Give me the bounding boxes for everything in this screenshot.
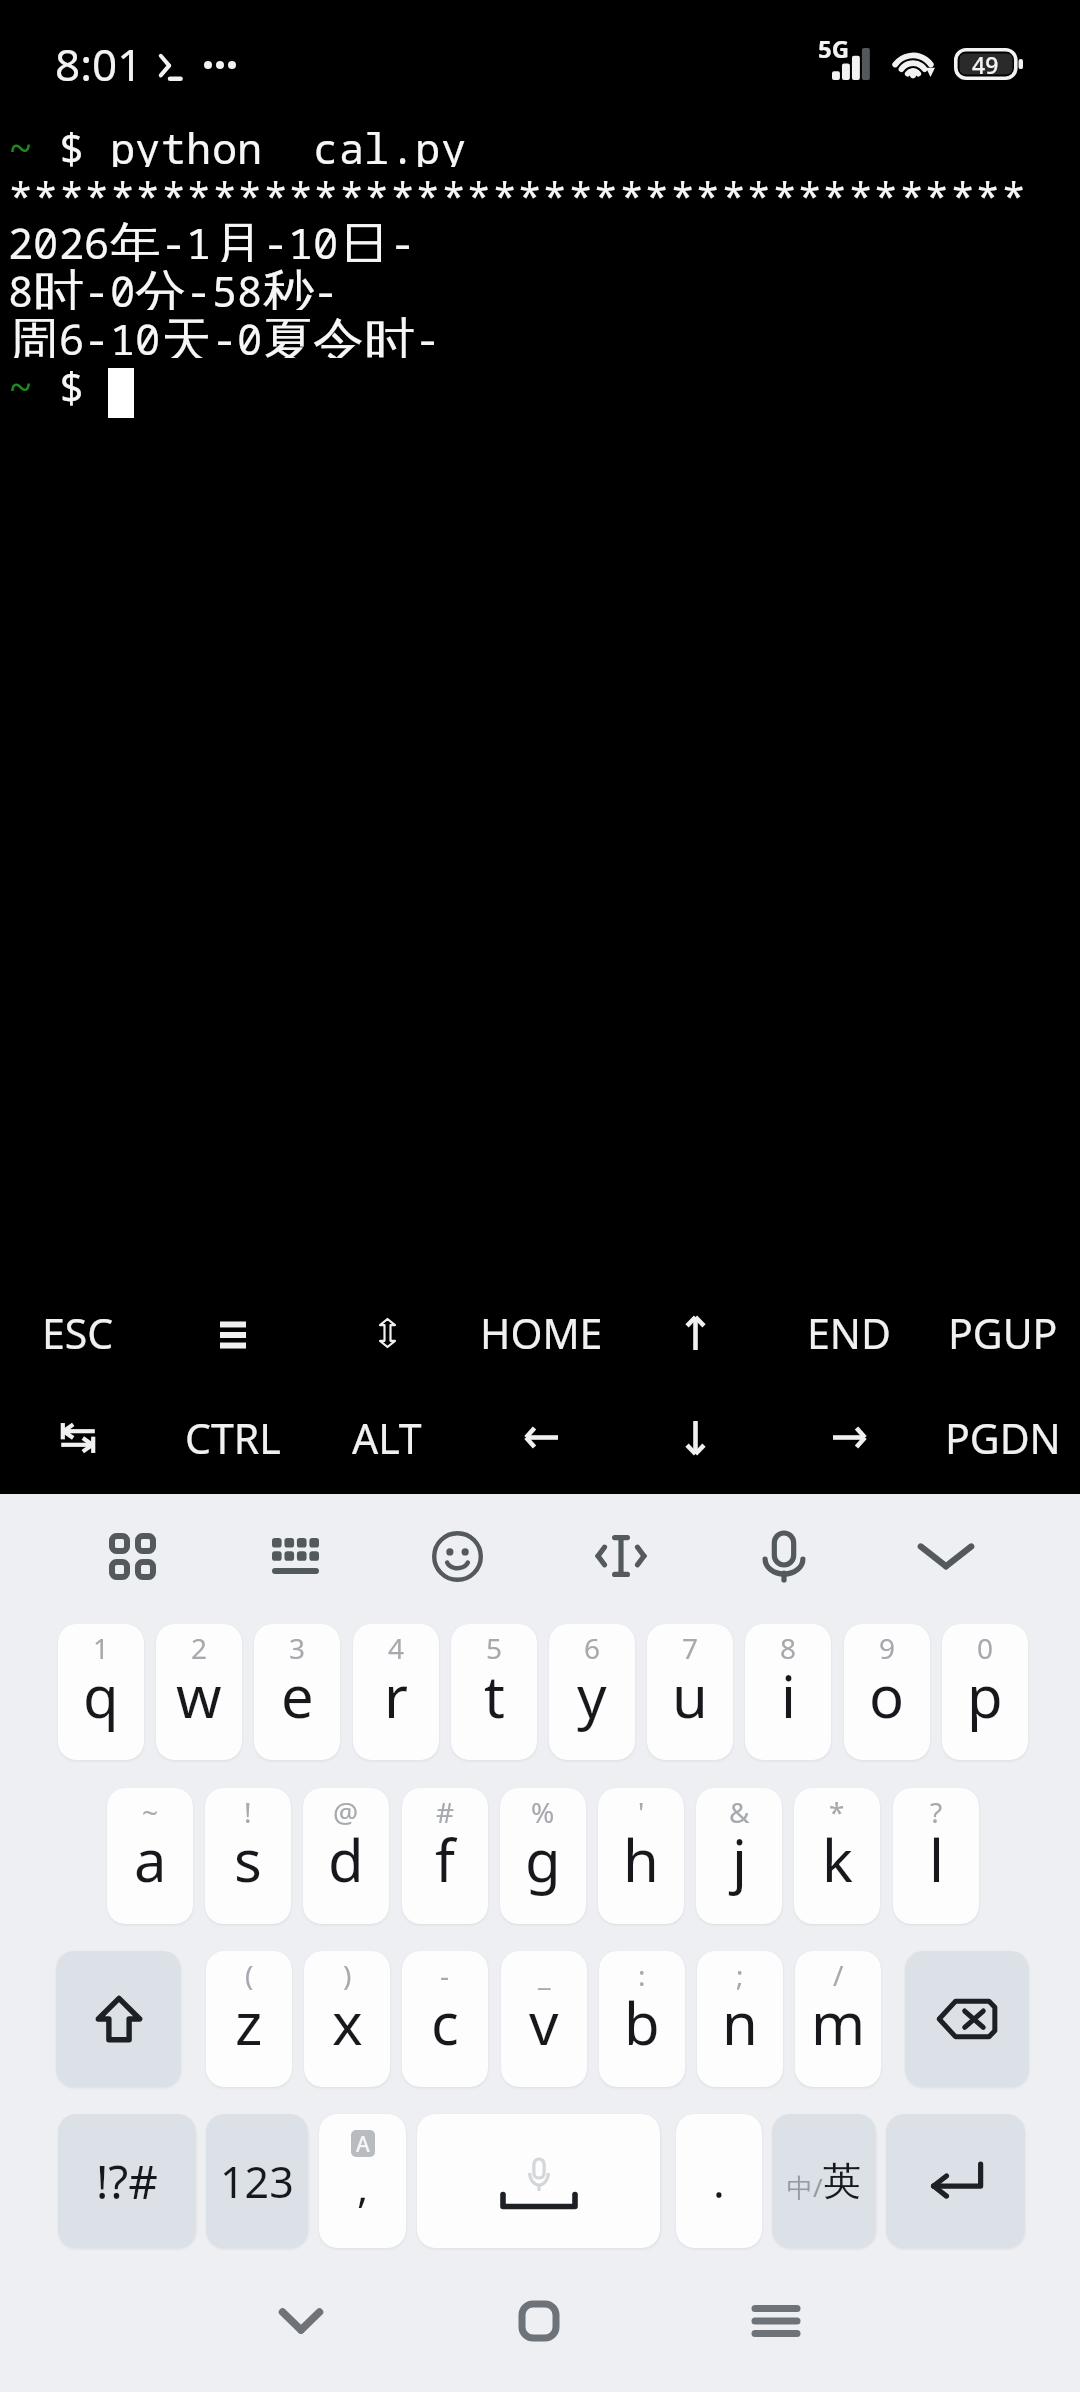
button[interactable]: *: [794, 1788, 880, 1924]
button[interactable]: Text editing: [575, 1510, 667, 1602]
button[interactable]: PGDN: [926, 1385, 1080, 1490]
button[interactable]: PGUP: [926, 1280, 1080, 1385]
button[interactable]: Apps: [86, 1510, 178, 1602]
staticText: ?: [930, 1793, 943, 1831]
button[interactable]: ALT: [310, 1385, 464, 1490]
staticText: *: [8, 167, 33, 215]
button[interactable]: Hide keyboard: [900, 1510, 992, 1602]
staticText: c: [431, 1983, 459, 2062]
button[interactable]: Keyboard layout: [249, 1510, 341, 1602]
button[interactable]: 9: [844, 1624, 930, 1760]
button[interactable]: &: [696, 1788, 782, 1924]
button[interactable]: 4: [353, 1624, 439, 1760]
button[interactable]: ): [304, 1951, 390, 2087]
staticText: y: [135, 119, 160, 167]
button[interactable]: %: [500, 1788, 586, 1924]
button[interactable]: Arrow up: [618, 1280, 772, 1385]
staticText: *: [746, 167, 771, 215]
staticText: 5: [486, 1629, 503, 1667]
staticText: 3: [289, 1629, 306, 1667]
staticText: *: [161, 167, 186, 215]
staticText: 1: [93, 1629, 110, 1667]
staticText: -: [440, 1956, 450, 1994]
staticText: -: [84, 310, 109, 358]
staticText: q: [83, 1656, 119, 1735]
staticText: e: [281, 1656, 314, 1735]
staticText: *: [33, 167, 58, 215]
staticText: ALT: [352, 1410, 422, 1466]
button[interactable]: #: [402, 1788, 488, 1924]
button[interactable]: Arrow left: [464, 1385, 618, 1490]
staticText: *: [899, 167, 924, 215]
staticText: p: [110, 119, 135, 167]
button[interactable]: Recents: [731, 2276, 821, 2366]
staticText: *: [517, 167, 542, 215]
staticText: *: [772, 167, 797, 215]
staticText: 月: [212, 214, 263, 262]
button[interactable]: END: [772, 1280, 926, 1385]
staticText: *: [364, 167, 389, 215]
button[interactable]: 1: [58, 1624, 144, 1760]
staticText: b: [624, 1983, 660, 2062]
staticText: ;: [736, 1956, 744, 1994]
staticText: p: [967, 1656, 1003, 1735]
staticText: ): [343, 1956, 352, 1994]
button[interactable]: Emoji: [411, 1510, 503, 1602]
staticText: 年: [110, 214, 161, 262]
button[interactable]: ?: [893, 1788, 979, 1924]
button[interactable]: 2: [156, 1624, 242, 1760]
button[interactable]: 6: [549, 1624, 635, 1760]
button[interactable]: A: [319, 2114, 406, 2248]
button[interactable]: CTRL: [155, 1385, 310, 1490]
button[interactable]: Back: [256, 2276, 346, 2366]
button[interactable]: @: [303, 1788, 389, 1924]
staticText: p: [415, 119, 440, 167]
staticText: 日: [339, 214, 390, 262]
staticText: 秒: [263, 262, 314, 310]
button[interactable]: Shift: [56, 1951, 181, 2087]
staticText: *: [924, 167, 949, 215]
button[interactable]: 3: [254, 1624, 340, 1760]
button[interactable]: 0: [942, 1624, 1028, 1760]
staticText: n: [722, 1983, 758, 2062]
button[interactable]: Space: [417, 2114, 660, 2248]
button[interactable]: 8: [745, 1624, 831, 1760]
staticText: 天: [161, 310, 212, 358]
staticText: 6: [584, 1629, 601, 1667]
staticText: l: [929, 1820, 944, 1899]
staticText: *: [288, 167, 313, 215]
button[interactable]: Scroll: [310, 1280, 464, 1385]
button[interactable]: 5: [451, 1624, 537, 1760]
button[interactable]: 7: [647, 1624, 733, 1760]
button[interactable]: /: [795, 1951, 881, 2087]
button[interactable]: Voice input: [738, 1510, 830, 1602]
button[interactable]: Menu: [155, 1280, 310, 1385]
button[interactable]: ': [598, 1788, 684, 1924]
staticText: 9: [879, 1629, 896, 1667]
button[interactable]: Tab: [0, 1385, 155, 1490]
staticText: 时: [33, 262, 84, 310]
button[interactable]: -: [402, 1951, 488, 2087]
button[interactable]: .: [676, 2114, 762, 2248]
button[interactable]: Backspace: [905, 1951, 1029, 2087]
button[interactable]: Arrow down: [618, 1385, 772, 1490]
button[interactable]: Home: [494, 2276, 584, 2366]
staticText: 2: [59, 214, 84, 262]
staticText: 中/: [787, 2169, 823, 2205]
button[interactable]: 中/: [772, 2114, 876, 2248]
button[interactable]: 123: [206, 2114, 308, 2248]
button[interactable]: ~: [107, 1788, 193, 1924]
button[interactable]: !: [205, 1788, 291, 1924]
button[interactable]: :: [599, 1951, 685, 2087]
button[interactable]: ESC: [0, 1280, 155, 1385]
staticText: *: [186, 167, 211, 215]
button[interactable]: !?#: [58, 2114, 196, 2248]
button[interactable]: (: [206, 1951, 292, 2087]
button[interactable]: _: [501, 1951, 587, 2087]
staticText: *: [415, 167, 440, 215]
button[interactable]: HOME: [464, 1280, 618, 1385]
staticText: c: [313, 119, 338, 167]
button[interactable]: Arrow right: [772, 1385, 926, 1490]
button[interactable]: ;: [697, 1951, 783, 2087]
button[interactable]: Enter: [886, 2114, 1025, 2248]
